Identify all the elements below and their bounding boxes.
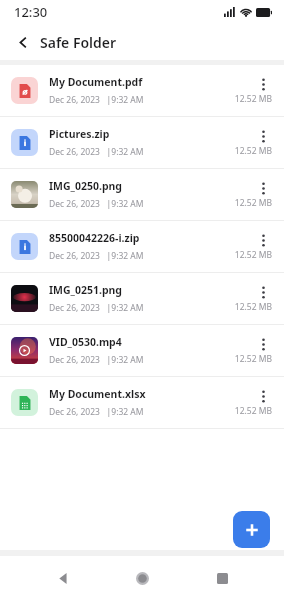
button[interactable]: Recent apps	[205, 561, 239, 595]
staticText: Dec 26, 2023 |9:32 AM	[49, 250, 144, 262]
button[interactable]: Pictures.zip	[0, 117, 284, 168]
button[interactable]: My Document.pdf	[0, 65, 284, 116]
staticText: Dec 26, 2023 |9:32 AM	[49, 94, 144, 106]
staticText: Safe Folder	[40, 33, 117, 52]
staticText: Dec 26, 2023 |9:32 AM	[49, 406, 144, 418]
button[interactable]: More options	[254, 336, 272, 352]
staticText: 12.52 MB	[234, 249, 272, 261]
button[interactable]: More options	[254, 180, 272, 196]
button[interactable]: More options	[254, 128, 272, 144]
staticText: VID_0530.mp4	[49, 335, 122, 349]
button[interactable]: Back	[46, 561, 80, 595]
staticText: My Document.xlsx	[49, 387, 146, 401]
button[interactable]: 85500042226-i.zip	[0, 221, 284, 272]
button[interactable]: IMG_0250.png	[0, 169, 284, 220]
button[interactable]: More options	[254, 284, 272, 300]
staticText: 12:30	[14, 3, 48, 21]
button[interactable]: My Document.xlsx	[0, 377, 284, 428]
button[interactable]: VID_0530.mp4	[0, 325, 284, 376]
staticText: My Document.pdf	[49, 75, 143, 89]
button[interactable]: IMG_0251.png	[0, 273, 284, 324]
staticText: 85500042226-i.zip	[49, 231, 140, 245]
staticText: 12.52 MB	[234, 93, 272, 105]
staticText: Dec 26, 2023 |9:32 AM	[49, 198, 144, 210]
staticText: IMG_0251.png	[49, 283, 122, 297]
staticText: Dec 26, 2023 |9:32 AM	[49, 354, 144, 366]
staticText: 12.52 MB	[234, 197, 272, 209]
button[interactable]: More options	[254, 232, 272, 248]
staticText: 12.52 MB	[234, 353, 272, 365]
button[interactable]: Back	[10, 29, 36, 55]
button[interactable]: More options	[254, 76, 272, 92]
staticText: Dec 26, 2023 |9:32 AM	[49, 146, 144, 158]
button[interactable]: Home	[125, 561, 159, 595]
staticText: 12.52 MB	[234, 405, 272, 417]
staticText: 12.52 MB	[234, 301, 272, 313]
button[interactable]: Add file	[233, 511, 270, 548]
staticText: 12.52 MB	[234, 145, 272, 157]
staticText: Dec 26, 2023 |9:32 AM	[49, 302, 144, 314]
staticText: Pictures.zip	[49, 127, 110, 141]
staticText: IMG_0250.png	[49, 179, 122, 193]
button[interactable]: More options	[254, 388, 272, 404]
